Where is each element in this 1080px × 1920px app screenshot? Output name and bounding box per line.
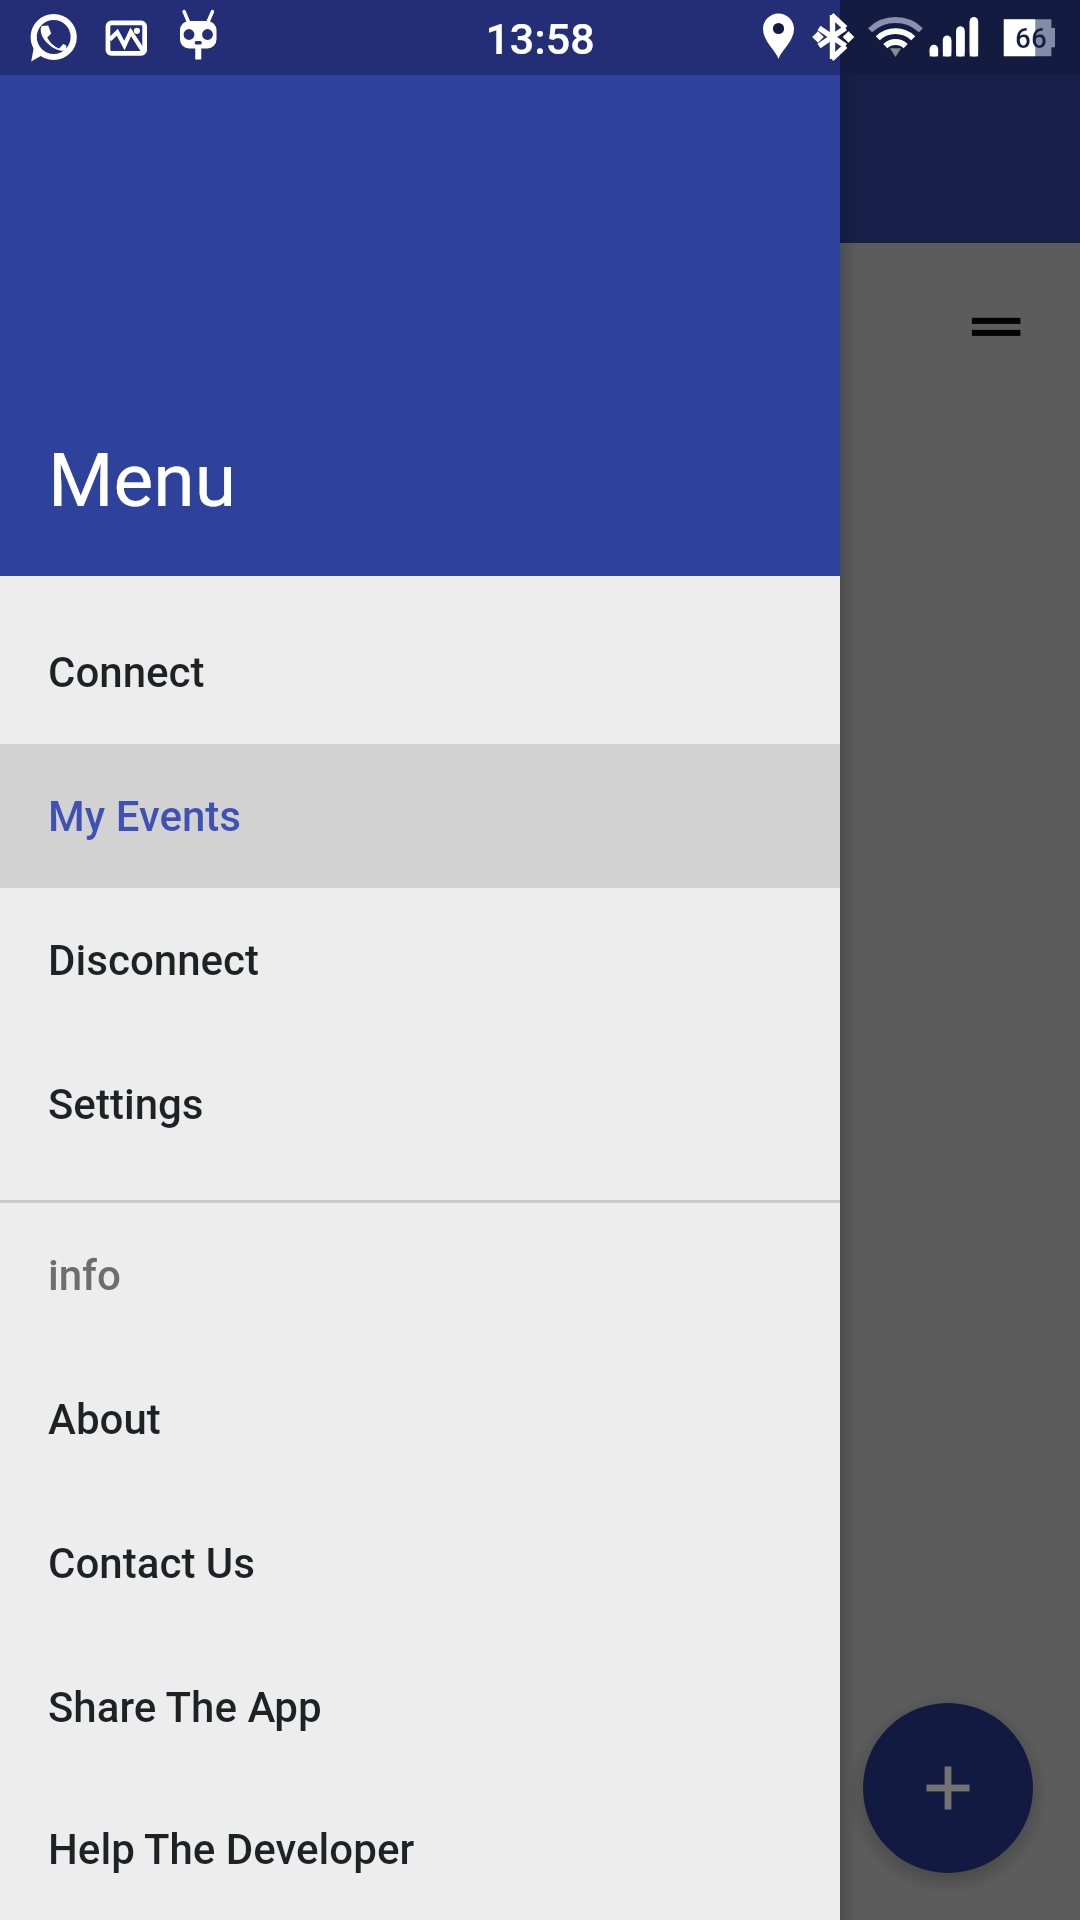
button[interactable]: Disconnect [0,888,840,1032]
staticText: info [48,1251,121,1300]
button[interactable]: Help The Developer [0,1779,840,1920]
button[interactable]: Connect [0,600,840,744]
staticText: Menu [48,436,237,524]
button[interactable]: Add event [863,1703,1033,1873]
button[interactable]: Contact Us [0,1491,840,1635]
staticText: About [48,1395,161,1444]
staticText: 66 [1015,22,1047,55]
staticText: Connect [48,648,205,697]
staticText: Contact Us [48,1539,255,1588]
staticText: My Events [48,792,241,841]
button[interactable]: About [0,1347,840,1491]
button[interactable]: Settings [0,1032,840,1176]
button[interactable]: Share The App [0,1635,840,1779]
staticText: Help The Developer [48,1825,415,1874]
button[interactable]: My Events [0,744,840,888]
staticText: Disconnect [48,936,260,985]
other: Sort [960,295,1032,350]
staticText: Settings [48,1080,204,1129]
staticText: Share The App [48,1683,322,1732]
staticText: 13:58 [0,14,1080,64]
